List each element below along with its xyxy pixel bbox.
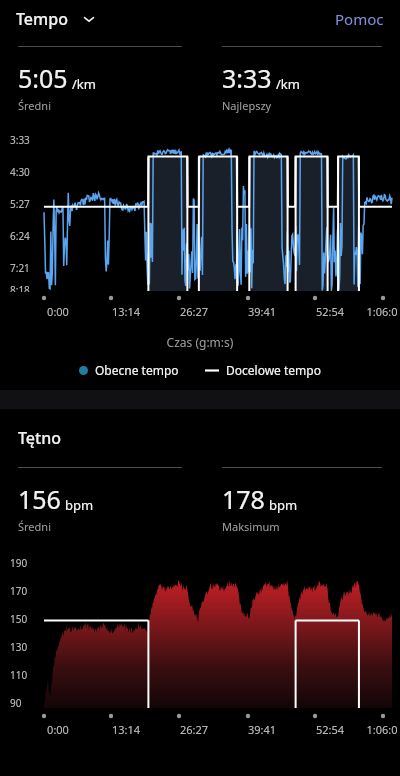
staticText: Tempo bbox=[16, 8, 68, 30]
staticText: /km bbox=[72, 75, 96, 93]
staticText: Najlepszy bbox=[222, 98, 272, 113]
staticText: Czas (g:m:s) bbox=[0, 334, 400, 350]
staticText: 4:30 bbox=[10, 165, 30, 179]
staticText: 26:27 bbox=[160, 722, 228, 737]
button[interactable]: Docelowe tempo bbox=[205, 362, 321, 378]
staticText: 13:14 bbox=[92, 722, 160, 737]
other: Zmień metrykę bbox=[82, 12, 96, 26]
staticText: 8:18 bbox=[10, 283, 30, 292]
staticText: Pomoc bbox=[335, 9, 384, 29]
staticText: 52:54 bbox=[296, 304, 364, 319]
staticText: Średni bbox=[18, 519, 51, 534]
button[interactable]: Pomoc bbox=[335, 9, 384, 29]
staticText: 7:21 bbox=[10, 261, 30, 275]
staticText: bpm bbox=[269, 496, 298, 514]
button[interactable]: Tętno bbox=[18, 427, 61, 449]
button[interactable]: 3:33 bbox=[222, 46, 382, 113]
staticText: 178 bbox=[222, 482, 265, 516]
staticText: 0:00 bbox=[24, 304, 92, 319]
button[interactable]: Tempo bbox=[16, 8, 96, 30]
staticText: 130 bbox=[10, 640, 28, 654]
staticText: 52:54 bbox=[296, 722, 364, 737]
staticText: /km bbox=[276, 75, 300, 93]
staticText: 5:27 bbox=[10, 197, 30, 211]
staticText: 26:27 bbox=[160, 304, 228, 319]
button[interactable]: 156 bbox=[18, 467, 182, 534]
staticText: 0:00 bbox=[24, 722, 92, 737]
staticText: 1:06:08 bbox=[364, 722, 400, 738]
staticText: 5:05 bbox=[18, 61, 68, 95]
staticText: Tętno bbox=[18, 427, 61, 449]
staticText: 39:41 bbox=[228, 304, 296, 319]
staticText: 150 bbox=[10, 612, 28, 626]
staticText: 190 bbox=[10, 556, 28, 570]
staticText: 170 bbox=[10, 584, 28, 598]
staticText: 13:14 bbox=[92, 304, 160, 319]
staticText: bpm bbox=[65, 496, 94, 514]
staticText: 39:41 bbox=[228, 722, 296, 737]
staticText: 156 bbox=[18, 482, 61, 516]
staticText: 6:24 bbox=[10, 229, 30, 243]
button[interactable]: 5:05 bbox=[18, 46, 182, 113]
staticText: 1:06:08 bbox=[364, 304, 400, 320]
button[interactable]: 178 bbox=[222, 467, 382, 534]
button[interactable]: Obecne tempo bbox=[79, 362, 179, 378]
staticText: 90 bbox=[10, 696, 22, 710]
staticText: Maksimum bbox=[222, 519, 280, 534]
staticText: Średni bbox=[18, 98, 51, 113]
staticText: 3:33 bbox=[10, 133, 30, 147]
staticText: Obecne tempo bbox=[95, 362, 179, 378]
staticText: 3:33 bbox=[222, 61, 272, 95]
staticText: Docelowe tempo bbox=[226, 362, 321, 378]
staticText: 110 bbox=[10, 668, 28, 682]
